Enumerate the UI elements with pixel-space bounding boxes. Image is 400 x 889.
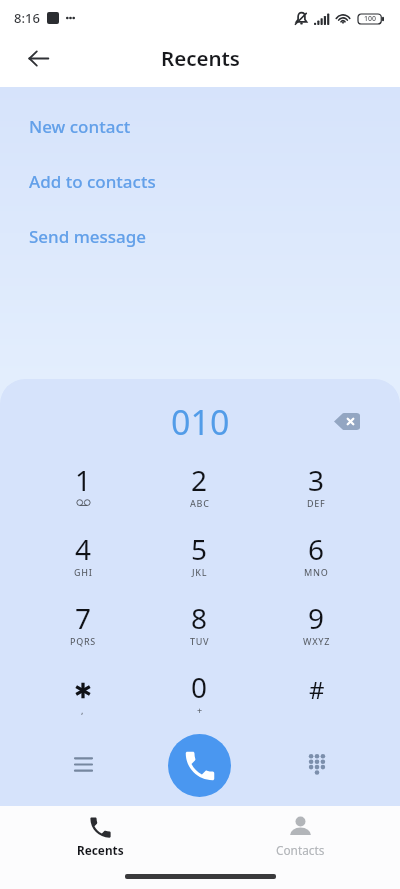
- staticText: 010: [171, 399, 230, 445]
- staticText: 5: [191, 530, 208, 568]
- staticText: 100: [364, 14, 377, 24]
- staticText: ,: [81, 704, 85, 716]
- button[interactable]: Send message: [0, 209, 400, 264]
- staticText: Add to contacts: [29, 170, 156, 193]
- button[interactable]: 8: [141, 592, 258, 661]
- button[interactable]: New contact: [0, 99, 400, 154]
- button[interactable]: #: [258, 661, 375, 730]
- button[interactable]: Contacts: [200, 814, 400, 864]
- staticText: Recents: [161, 44, 240, 72]
- button[interactable]: 4: [25, 523, 141, 592]
- staticText: +: [197, 704, 203, 716]
- staticText: 9: [308, 599, 325, 637]
- button[interactable]: Call log: [52, 735, 114, 797]
- button[interactable]: 0: [141, 661, 258, 730]
- staticText: GHI: [74, 566, 93, 578]
- staticText: DEF: [307, 497, 326, 509]
- staticText: WXYZ: [303, 635, 331, 647]
- staticText: 3: [308, 461, 325, 499]
- staticText: MNO: [304, 566, 329, 578]
- button[interactable]: Backspace: [325, 395, 369, 439]
- staticText: Contacts: [276, 842, 325, 858]
- button[interactable]: ,: [25, 661, 141, 730]
- staticText: #: [309, 673, 325, 706]
- staticText: ABC: [190, 497, 210, 509]
- staticText: 6: [308, 530, 325, 568]
- staticText: JKL: [192, 566, 208, 578]
- staticText: 7: [75, 599, 92, 637]
- button[interactable]: 1: [25, 454, 141, 523]
- button[interactable]: Recents: [0, 814, 200, 864]
- staticText: PQRS: [70, 635, 96, 647]
- staticText: 8: [191, 599, 208, 637]
- button[interactable]: Add to contacts: [0, 154, 400, 209]
- staticText: 0: [191, 668, 208, 706]
- button[interactable]: 5: [141, 523, 258, 592]
- staticText: 1: [75, 461, 92, 499]
- button[interactable]: Call: [168, 734, 231, 797]
- staticText: Send message: [29, 225, 147, 248]
- staticText: 8:16: [14, 9, 40, 27]
- button[interactable]: Keypad: [286, 735, 348, 797]
- staticText: New contact: [29, 115, 131, 138]
- button[interactable]: 9: [258, 592, 375, 661]
- staticText: TUV: [190, 635, 210, 647]
- button[interactable]: Back: [16, 36, 60, 80]
- staticText: 2: [191, 461, 208, 499]
- staticText: Recents: [77, 842, 124, 858]
- button[interactable]: 2: [141, 454, 258, 523]
- staticText: 4: [75, 530, 92, 568]
- button[interactable]: 3: [258, 454, 375, 523]
- button[interactable]: 7: [25, 592, 141, 661]
- button[interactable]: 6: [258, 523, 375, 592]
